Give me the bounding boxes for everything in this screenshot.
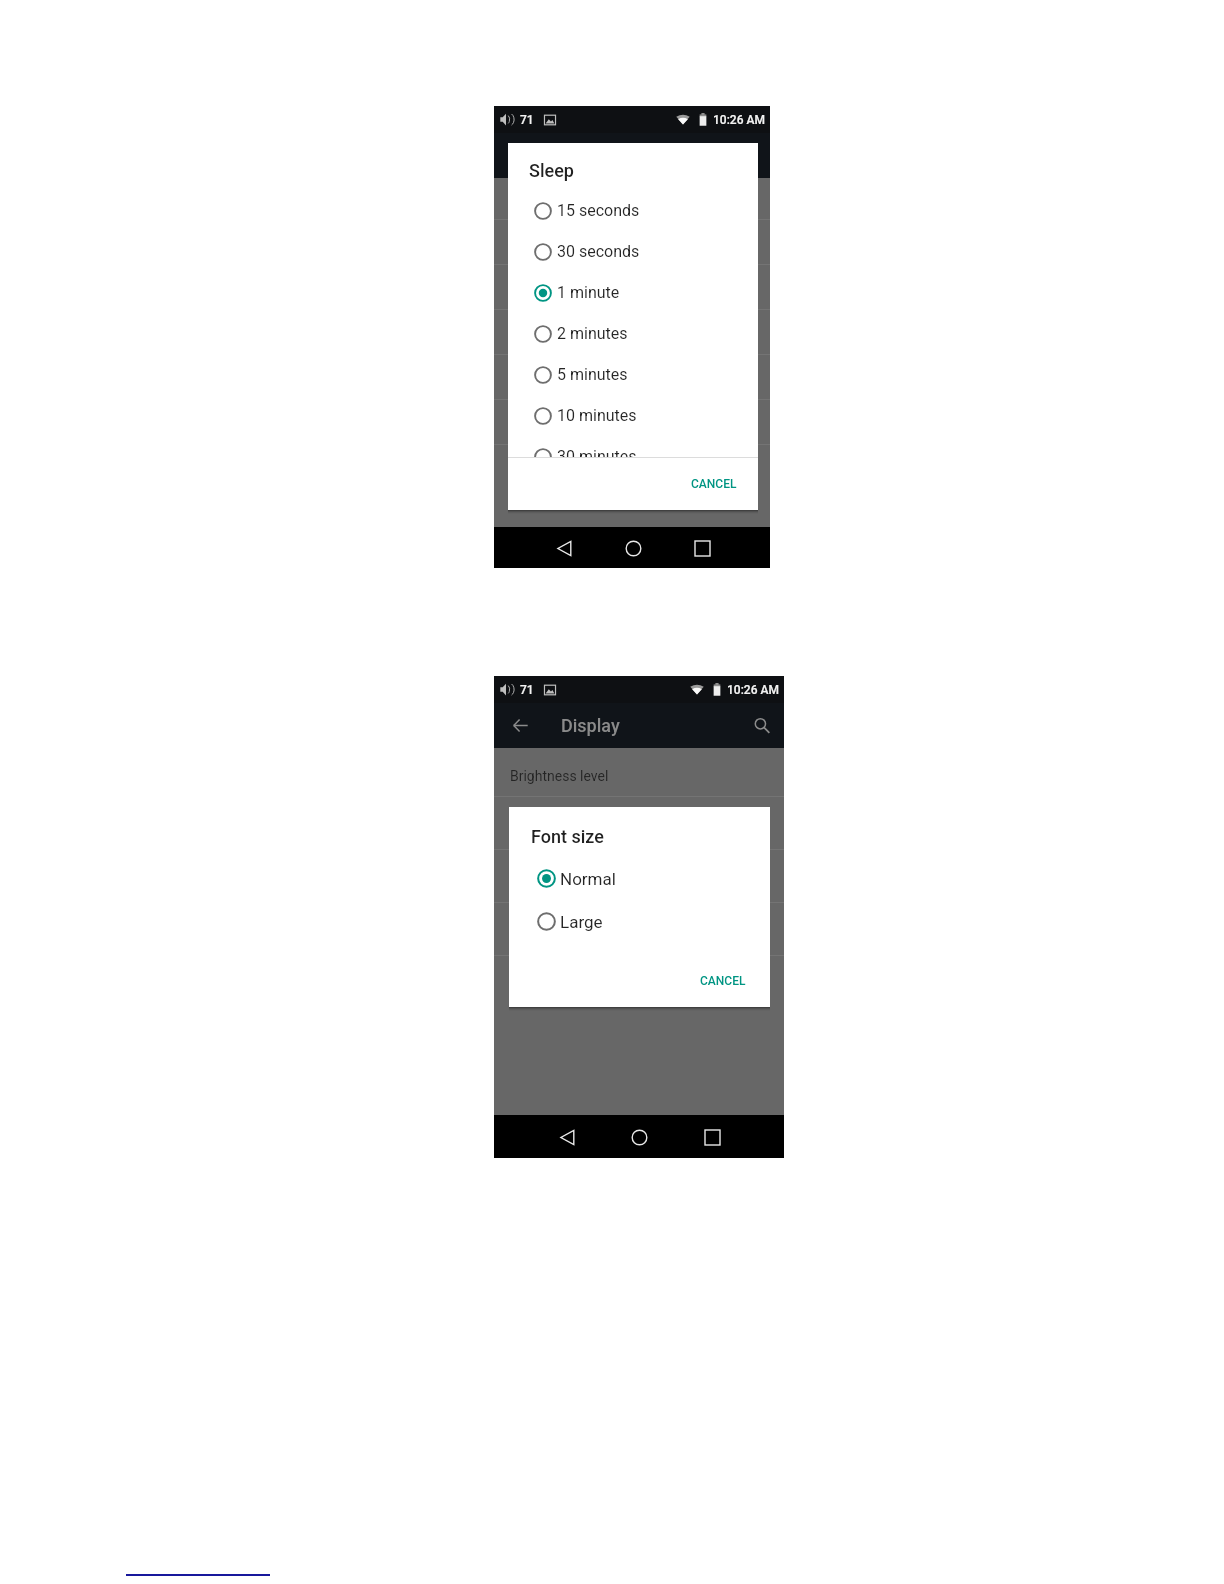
staticText: 15 seconds [557, 201, 640, 220]
button[interactable]: Recent apps [685, 531, 719, 565]
staticText: 71 [520, 683, 534, 697]
staticText: Brightness level [510, 768, 609, 784]
staticText: 10:26 AM [713, 113, 765, 127]
button[interactable]: Navigate up [503, 703, 537, 748]
button[interactable]: Recent apps [695, 1120, 729, 1154]
staticText: CANCEL [700, 974, 746, 988]
staticText: 1 minute [557, 283, 620, 302]
staticText: Normal [560, 869, 616, 889]
staticText: Sleep [529, 160, 574, 181]
button[interactable]: 15 seconds [508, 190, 758, 231]
staticText: 30 minutes [557, 447, 637, 466]
staticText: 10 minutes [557, 406, 637, 425]
button[interactable]: 5 minutes [508, 354, 758, 395]
staticText: Font size [531, 826, 604, 847]
button[interactable]: 10 minutes [508, 395, 758, 436]
button[interactable]: Large [509, 900, 770, 943]
button[interactable]: 30 minutes [508, 436, 758, 477]
button[interactable]: 1 minute [508, 272, 758, 313]
button[interactable]: 30 seconds [508, 231, 758, 272]
button[interactable]: CANCEL [686, 955, 760, 1007]
button[interactable]: Back [550, 1120, 584, 1154]
button[interactable]: Home [616, 531, 650, 565]
button[interactable]: Search [740, 703, 784, 748]
button[interactable]: CANCEL [677, 457, 751, 510]
staticText: 30 seconds [557, 242, 640, 261]
staticText: Display [561, 715, 620, 736]
staticText: 71 [520, 113, 534, 127]
staticText: CANCEL [691, 477, 737, 491]
staticText: Large [560, 912, 603, 932]
button[interactable]: Back [547, 531, 581, 565]
button[interactable]: Home [622, 1120, 656, 1154]
button[interactable]: Normal [509, 857, 770, 900]
button[interactable]: 2 minutes [508, 313, 758, 354]
staticText: 5 minutes [557, 365, 628, 384]
staticText: 10:26 AM [727, 683, 779, 697]
staticText: 2 minutes [557, 324, 628, 343]
